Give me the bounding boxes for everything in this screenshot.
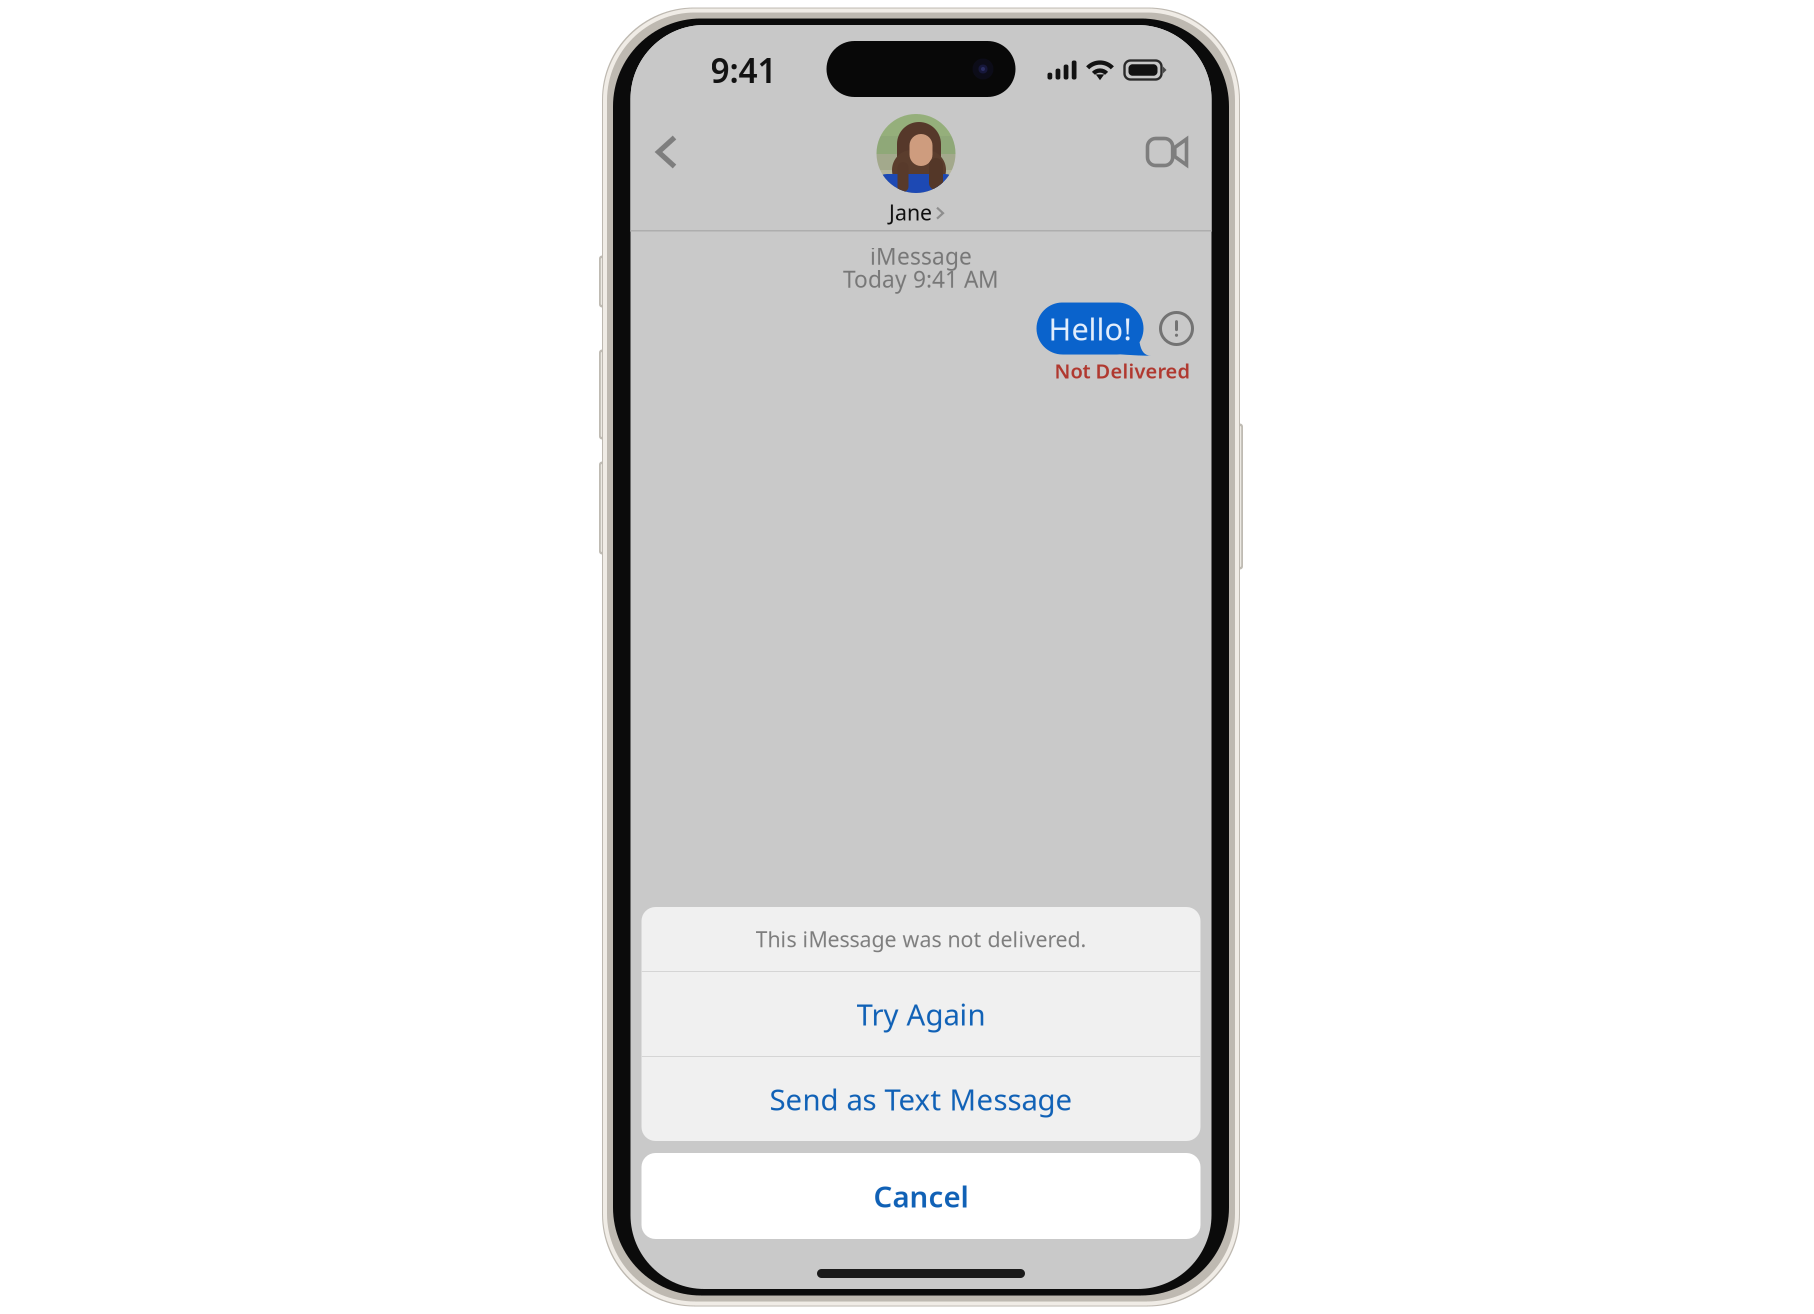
staticText: Not Delivered bbox=[1054, 357, 1190, 384]
staticText: This iMessage was not delivered. bbox=[755, 925, 1086, 953]
staticText: Today 9:41 AM bbox=[843, 264, 999, 294]
staticText: Hello! bbox=[1048, 308, 1131, 349]
staticText: Cancel bbox=[873, 1176, 968, 1215]
button[interactable]: Send as Text Message bbox=[641, 1057, 1200, 1141]
staticText: Jane bbox=[889, 198, 932, 226]
staticText: Send as Text Message bbox=[769, 1079, 1072, 1118]
staticText: Try Again bbox=[856, 994, 985, 1033]
staticText: iMessage bbox=[870, 241, 972, 271]
button[interactable]: Try Again bbox=[641, 972, 1200, 1056]
button[interactable]: Cancel bbox=[641, 1153, 1200, 1239]
staticText: 9:41 bbox=[710, 48, 776, 92]
button[interactable]: FaceTime bbox=[1125, 120, 1201, 183]
button[interactable]: Back bbox=[640, 119, 702, 184]
